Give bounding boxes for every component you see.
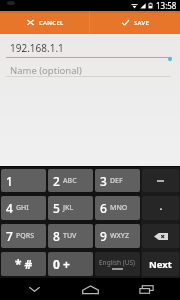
staticText: 4 bbox=[6, 200, 13, 216]
button[interactable]: 2 bbox=[48, 169, 93, 192]
button[interactable]: 5 bbox=[48, 196, 93, 220]
staticText: PQRS bbox=[16, 231, 35, 241]
staticText: * # bbox=[15, 256, 33, 272]
staticText: 5 bbox=[53, 200, 60, 216]
button[interactable]: 3 bbox=[95, 169, 140, 192]
button[interactable]: * # bbox=[1, 252, 46, 276]
button[interactable]: Back bbox=[12, 278, 56, 300]
button[interactable]: 4 bbox=[1, 196, 46, 220]
staticText: TUV bbox=[63, 231, 77, 241]
button[interactable]: 8 bbox=[48, 224, 93, 248]
button[interactable] bbox=[142, 196, 179, 220]
button[interactable]: 7 bbox=[1, 224, 46, 248]
button[interactable]: 6 bbox=[95, 196, 140, 220]
staticText: ABC bbox=[63, 176, 77, 186]
staticText: Name (optional) bbox=[10, 64, 82, 77]
staticText: English (US) bbox=[99, 258, 136, 267]
staticText: 0 + bbox=[53, 256, 70, 272]
button[interactable]: SAVE bbox=[90, 11, 180, 34]
button[interactable]: Home bbox=[68, 278, 112, 300]
staticText: WXYZ bbox=[110, 231, 129, 241]
staticText: 2 bbox=[53, 173, 60, 189]
button[interactable]: 0 + bbox=[48, 252, 93, 276]
button[interactable]: English (US) bbox=[95, 252, 140, 276]
button[interactable]: Name (optional) bbox=[0, 58, 180, 77]
staticText: MNO bbox=[110, 203, 128, 213]
button[interactable]: Recent apps bbox=[124, 278, 168, 300]
staticText: 7 bbox=[6, 228, 13, 244]
staticText: JKL bbox=[63, 203, 74, 213]
staticText: 9 bbox=[100, 228, 107, 244]
button[interactable]: Next bbox=[142, 252, 179, 276]
staticText: 8 bbox=[53, 228, 60, 244]
button[interactable] bbox=[142, 224, 179, 248]
staticText: DEF bbox=[110, 176, 123, 186]
button[interactable] bbox=[142, 169, 179, 192]
staticText: SAVE bbox=[134, 19, 150, 27]
button[interactable]: CANCEL bbox=[0, 11, 89, 34]
staticText: 192.168.1.1 bbox=[10, 41, 64, 55]
staticText: 3 bbox=[100, 173, 107, 189]
staticText: CANCEL bbox=[39, 19, 64, 27]
button[interactable]: 9 bbox=[95, 224, 140, 248]
staticText: 6 bbox=[100, 200, 107, 216]
staticText: 13:58 bbox=[156, 0, 177, 11]
staticText: 1 bbox=[6, 173, 13, 189]
button[interactable]: 1 bbox=[1, 169, 46, 192]
button[interactable]: 192.168.1.1 bbox=[0, 34, 180, 58]
staticText: GHI bbox=[16, 203, 29, 213]
staticText: Next bbox=[149, 258, 172, 271]
